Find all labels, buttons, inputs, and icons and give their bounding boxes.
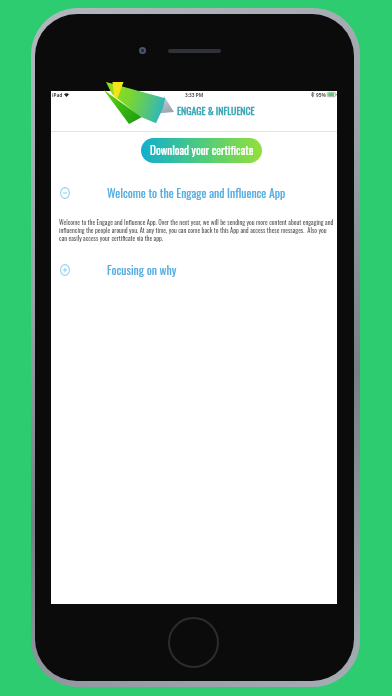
staticText: 3:33 PM — [185, 92, 204, 99]
staticText: ENGAGE & INFLUENCE — [177, 103, 255, 118]
button[interactable]: Collapse section — [51, 179, 337, 206]
button[interactable]: Download your certificate — [141, 138, 262, 163]
staticText: iPad — [52, 92, 63, 99]
staticText: Focusing on why — [107, 261, 177, 278]
staticText: Welcome to the Engage and Influence App.… — [59, 217, 336, 243]
button[interactable]: Expand section — [51, 256, 337, 283]
staticText: 95% — [316, 92, 326, 99]
staticText: Download your certificate — [150, 142, 254, 159]
staticText: Welcome to the Engage and Influence App — [107, 184, 286, 201]
